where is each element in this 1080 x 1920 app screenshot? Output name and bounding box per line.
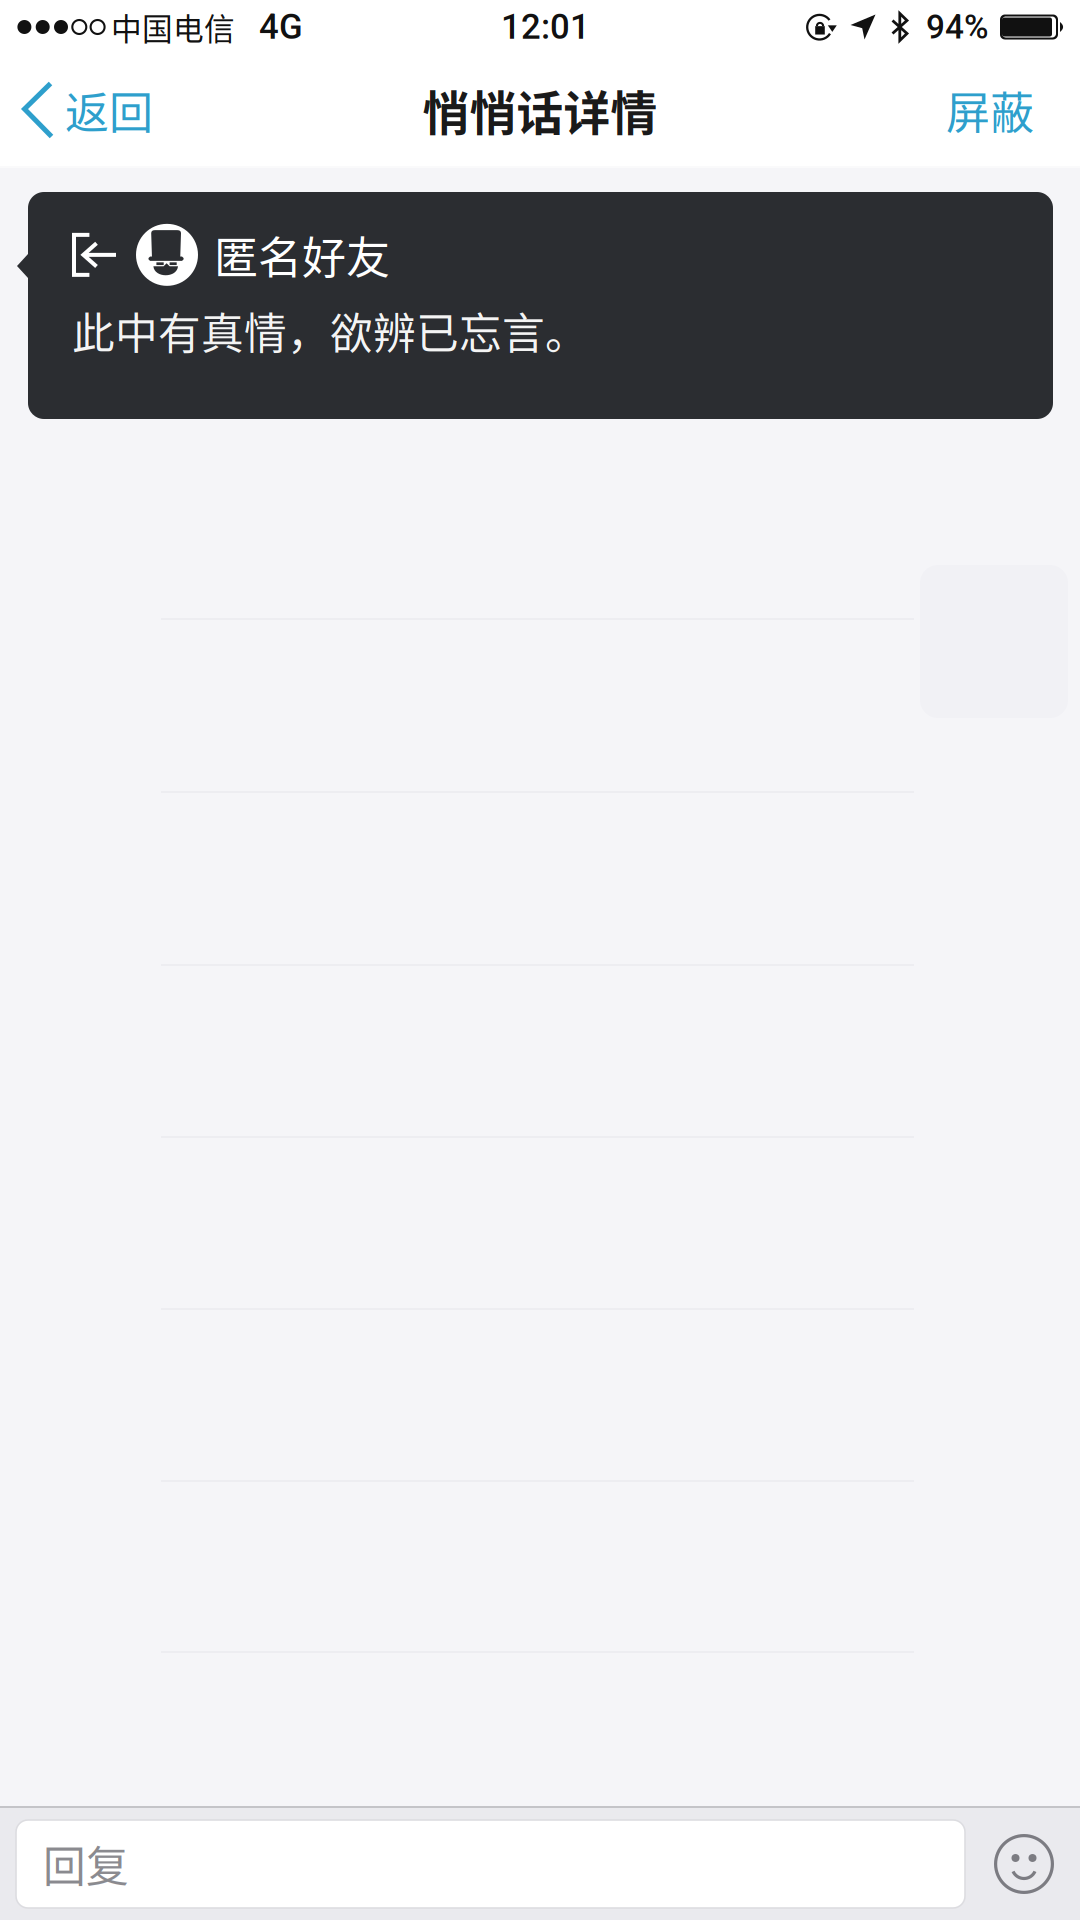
staticText: 回复 xyxy=(43,1833,129,1895)
staticText: 悄悄话详情 xyxy=(422,76,657,144)
staticText: 94% xyxy=(926,7,989,47)
staticText: 返回 xyxy=(65,78,153,142)
staticText: 12:01 xyxy=(501,7,590,47)
staticText: 此中有真情，欲辨已忘言。 xyxy=(72,300,588,361)
staticText: 屏蔽 xyxy=(946,78,1034,142)
staticText: 4G xyxy=(259,7,303,47)
staticText: 匿名好友 xyxy=(214,223,390,287)
button[interactable]: 返回 xyxy=(0,54,171,166)
staticText: 中国电信 xyxy=(111,5,235,49)
button[interactable]: 表情 xyxy=(982,1820,1066,1908)
button[interactable]: 屏蔽 xyxy=(924,54,1056,166)
button[interactable]: 回复 xyxy=(16,1820,965,1908)
